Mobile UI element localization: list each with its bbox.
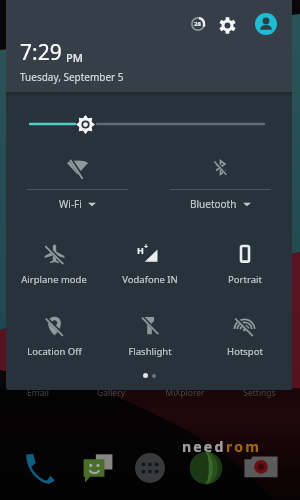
staticText: Portrait — [228, 273, 262, 286]
staticText: 28 — [194, 20, 201, 28]
button[interactable]: Camera — [242, 449, 280, 487]
button[interactable]: Location Off — [6, 304, 102, 347]
button[interactable]: Wi-Fi — [6, 152, 149, 182]
button[interactable]: Flashlight — [102, 304, 197, 347]
staticText: MiXplorer — [165, 387, 205, 399]
button[interactable]: MiXplorer — [150, 387, 220, 399]
button[interactable]: Bluetooth — [149, 152, 292, 182]
staticText: Tuesday, September 5 — [20, 70, 124, 84]
button[interactable]: Settings — [224, 387, 294, 399]
button[interactable]: Battery 28 percent — [186, 12, 209, 35]
staticText: need — [182, 437, 226, 456]
staticText: H — [137, 244, 144, 256]
staticText: Settings — [243, 387, 276, 399]
button[interactable]: Settings — [215, 13, 239, 37]
staticText: PM — [66, 50, 83, 65]
staticText: Email — [27, 387, 49, 399]
button[interactable]: Airplane mode — [6, 232, 102, 275]
button[interactable]: Email — [3, 387, 73, 399]
button[interactable]: Brightness — [76, 115, 95, 134]
button[interactable]: Gallery — [76, 387, 146, 399]
staticText: Wi-Fi — [59, 197, 82, 211]
staticText: 7:29 — [20, 38, 62, 67]
staticText: rom — [226, 437, 261, 456]
button[interactable]: User profile — [255, 13, 277, 35]
button[interactable]: Phone — [20, 449, 58, 487]
staticText: Gallery — [97, 387, 125, 399]
button[interactable]: Browser — [187, 449, 225, 487]
staticText: Flashlight — [128, 345, 172, 358]
staticText: + — [144, 242, 149, 252]
staticText: Vodafone IN — [122, 273, 178, 286]
staticText: Bluetooth — [190, 197, 237, 211]
button[interactable]: Apps — [131, 449, 169, 487]
button[interactable]: Messaging — [79, 449, 117, 487]
staticText: Hotspot — [227, 345, 263, 358]
button[interactable]: Hotspot — [197, 304, 292, 347]
button[interactable]: Portrait — [197, 232, 292, 275]
button[interactable]: H — [102, 232, 197, 275]
staticText: Airplane mode — [21, 273, 87, 286]
staticText: Location Off — [27, 345, 82, 358]
